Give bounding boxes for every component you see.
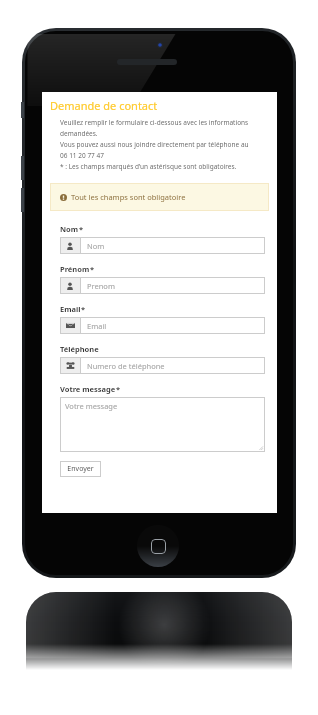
button[interactable]: Nom bbox=[60, 237, 265, 254]
staticText: * bbox=[79, 224, 84, 234]
staticText: Votre message bbox=[65, 401, 118, 411]
staticText: Numero de téléphone bbox=[87, 361, 165, 371]
staticText: Prénom bbox=[60, 264, 90, 274]
staticText: Veuillez remplir le formulaire ci-dessou… bbox=[60, 118, 249, 171]
staticText: Nom bbox=[87, 241, 105, 251]
button[interactable]: Numero de téléphone bbox=[60, 357, 265, 374]
staticText: Votre message bbox=[60, 384, 116, 394]
button[interactable]: Prenom bbox=[60, 277, 265, 294]
button[interactable]: Envoyer bbox=[60, 461, 101, 477]
staticText: * bbox=[116, 384, 121, 394]
staticText: Téléphone bbox=[60, 344, 99, 354]
staticText: Email bbox=[87, 321, 107, 331]
staticText: Envoyer bbox=[67, 464, 94, 474]
staticText: Tout les champs sont obligatoire bbox=[71, 192, 186, 202]
staticText: Email bbox=[60, 304, 81, 314]
staticText: * bbox=[81, 304, 86, 314]
staticText: * bbox=[90, 264, 95, 274]
button[interactable]: Votre message bbox=[60, 397, 265, 452]
staticText: Prenom bbox=[87, 281, 115, 291]
button[interactable]: Home bbox=[137, 525, 179, 567]
button[interactable]: Email bbox=[60, 317, 265, 334]
staticText: Nom bbox=[60, 224, 79, 234]
staticText: Demande de contact bbox=[50, 98, 158, 113]
